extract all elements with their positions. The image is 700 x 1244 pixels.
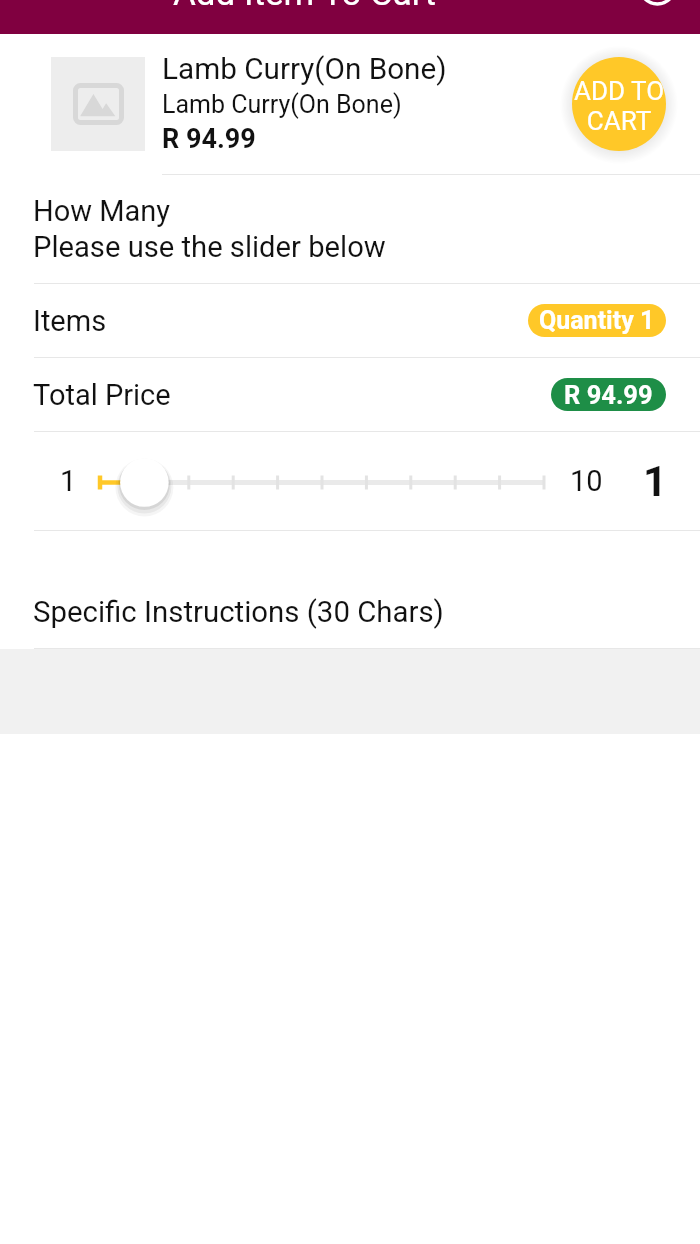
staticText: Lamb Curry(On Bone) (162, 51, 447, 86)
staticText: R 94.99 (564, 380, 653, 410)
staticText: Quantity 1 (539, 306, 655, 335)
button[interactable]: Items (0, 284, 700, 357)
button[interactable]: Total Price (0, 358, 700, 431)
staticText: Total Price (33, 378, 171, 412)
staticText: 10 (570, 464, 603, 498)
button[interactable]: Quantity 1 (528, 304, 666, 337)
staticText: ADD TO CART (572, 76, 666, 136)
staticText: How Many (33, 194, 171, 228)
staticText: Add Item To Cart (173, 0, 437, 7)
staticText: Items (33, 304, 107, 338)
staticText: R 94.99 (162, 123, 256, 155)
staticText: Lamb Curry(On Bone) (162, 90, 402, 119)
staticText: 1 (643, 457, 668, 506)
button[interactable]: Lamb Curry(On Bone) (0, 34, 700, 174)
button[interactable]: R 94.99 (551, 378, 666, 411)
staticText: 1 (60, 464, 77, 498)
button[interactable]: ADD TO CART (572, 57, 666, 151)
staticText: Please use the slider below (33, 230, 386, 264)
staticText: Specific Instructions (30 Chars) (33, 595, 444, 629)
